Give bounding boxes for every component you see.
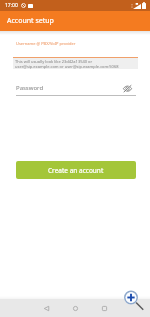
button[interactable]: Back xyxy=(32,299,61,317)
button[interactable]: Recents xyxy=(90,299,119,317)
staticText: user@sip.example.com or user@sip.example… xyxy=(15,64,119,69)
button[interactable]: Show password xyxy=(123,84,132,93)
staticText: Account setup xyxy=(7,16,54,26)
staticText: 17:00 xyxy=(5,2,18,9)
button[interactable]: Home xyxy=(61,299,90,317)
staticText: This will usually look like 23d42a13540 … xyxy=(15,59,93,64)
staticText: Password xyxy=(16,84,44,92)
staticText: Create an account xyxy=(48,166,104,175)
button[interactable]: Create an account xyxy=(16,161,136,179)
staticText: Username @ PBX/VoIP provider xyxy=(16,41,76,46)
